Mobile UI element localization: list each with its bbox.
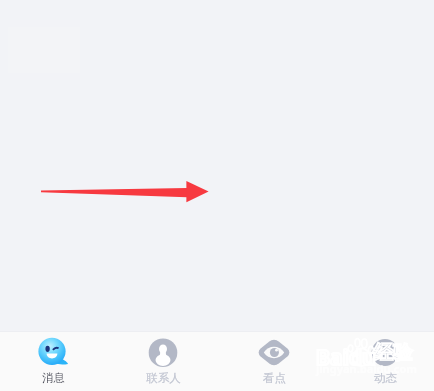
- button[interactable]: Contacts: [128, 332, 198, 391]
- staticText: 联系人: [146, 371, 181, 385]
- staticText: 经验: [374, 341, 412, 365]
- staticText: Baidu: [316, 343, 376, 372]
- staticText: Baidu: [316, 343, 376, 372]
- staticText: 看点: [263, 371, 286, 385]
- staticText: 消息: [42, 371, 65, 385]
- button[interactable]: Messages: [18, 332, 88, 391]
- staticText: jingyan.baidu.com: [316, 361, 418, 376]
- button[interactable]: Moments: [350, 332, 420, 391]
- staticText: 动态: [374, 371, 397, 385]
- button[interactable]: Kandian: [239, 332, 309, 391]
